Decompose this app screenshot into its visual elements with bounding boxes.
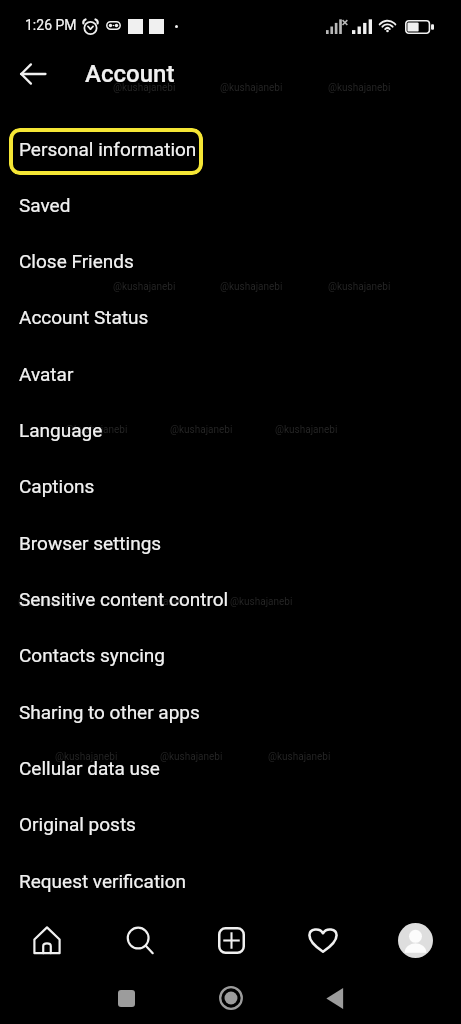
staticText: @kushajanebi	[230, 596, 293, 608]
staticText: @kushajanebi	[328, 82, 391, 94]
staticText: Sharing to other apps	[19, 701, 200, 723]
staticText: Language	[19, 419, 103, 441]
staticText: @kushajanebi	[220, 82, 283, 94]
button[interactable]: Search	[93, 912, 185, 968]
staticText: @kushajanebi	[275, 424, 338, 436]
staticText: Saved	[19, 194, 71, 216]
staticText: 1:26 PM	[25, 17, 77, 33]
staticText: @kushajanebi	[113, 82, 176, 94]
staticText: Avatar	[19, 363, 74, 385]
staticText: @kushajanebi	[125, 596, 188, 608]
button[interactable]: Contacts syncing	[0, 627, 461, 683]
button[interactable]: Original posts	[0, 796, 461, 852]
button[interactable]: Back	[11, 52, 55, 96]
staticText: @kushajanebi	[170, 424, 233, 436]
staticText: Sensitive content control	[19, 588, 229, 610]
staticText: @kushajanebi	[113, 281, 176, 293]
button[interactable]: Home	[219, 986, 243, 1010]
button[interactable]: Home	[0, 912, 93, 968]
staticText: @kushajanebi	[160, 751, 223, 763]
button[interactable]: Profile	[369, 912, 461, 968]
button[interactable]: Browser settings	[0, 515, 461, 571]
button[interactable]: Request verification	[0, 853, 461, 909]
button[interactable]: Personal information	[9, 128, 203, 175]
staticText: Contacts syncing	[19, 644, 165, 666]
staticText: @kushajanebi	[65, 424, 128, 436]
button[interactable]: Sharing to other apps	[0, 684, 461, 740]
staticText: Browser settings	[19, 532, 162, 554]
staticText: Request verification	[19, 870, 187, 892]
button[interactable]: Back	[326, 988, 344, 1009]
staticText: Close Friends	[19, 250, 134, 272]
staticText: @kushajanebi	[220, 281, 283, 293]
button[interactable]: Language	[0, 402, 461, 458]
button[interactable]: Create	[185, 912, 277, 968]
button[interactable]: Saved	[0, 177, 461, 233]
staticText: Account	[85, 60, 175, 88]
staticText: Captions	[19, 475, 95, 497]
staticText: @kushajanebi	[268, 751, 331, 763]
button[interactable]: Sensitive content control	[0, 571, 461, 627]
button[interactable]: Avatar	[0, 346, 461, 402]
button[interactable]: Recent apps	[118, 990, 135, 1007]
button[interactable]: Captions	[0, 458, 461, 514]
staticText: Account Status	[19, 306, 149, 328]
staticText: Original posts	[19, 813, 136, 835]
staticText: @kushajanebi	[328, 281, 391, 293]
staticText: @kushajanebi	[18, 596, 81, 608]
staticText: @kushajanebi	[55, 751, 118, 763]
button[interactable]: Account Status	[0, 289, 461, 345]
button[interactable]: Activity	[277, 912, 369, 968]
staticText: Personal information	[19, 138, 197, 160]
staticText: Cellular data use	[19, 757, 160, 779]
button[interactable]: Close Friends	[0, 233, 461, 289]
button[interactable]: Cellular data use	[0, 740, 461, 796]
